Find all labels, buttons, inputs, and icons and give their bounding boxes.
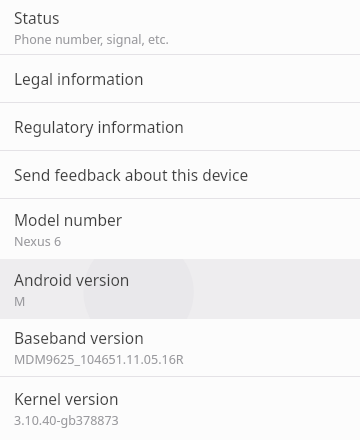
button[interactable]: Android version [0, 259, 360, 319]
button[interactable]: Model number [0, 199, 360, 259]
staticText: M [14, 293, 26, 310]
staticText: Kernel version [14, 388, 119, 409]
button[interactable]: Status [0, 0, 360, 54]
staticText: Baseband version [14, 327, 144, 348]
button[interactable]: Baseband version [0, 319, 360, 376]
staticText: Android version [14, 269, 130, 290]
staticText: 3.10.40-gb378873 [14, 412, 119, 429]
staticText: Legal information [14, 68, 144, 89]
button[interactable]: Regulatory information [0, 103, 360, 150]
button[interactable]: Legal information [0, 55, 360, 102]
staticText: Phone number, signal, etc. [14, 31, 169, 48]
button[interactable]: Kernel version [0, 377, 360, 439]
staticText: MDM9625_104651.11.05.16R [14, 351, 184, 368]
staticText: Model number [14, 209, 123, 230]
staticText: Regulatory information [14, 116, 184, 137]
staticText: Send feedback about this device [14, 164, 249, 185]
staticText: Status [14, 7, 60, 28]
button[interactable]: Send feedback about this device [0, 151, 360, 198]
staticText: Nexus 6 [14, 233, 62, 250]
